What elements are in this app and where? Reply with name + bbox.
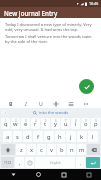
button[interactable]: 8 <box>71 118 80 129</box>
button[interactable]: Backspace <box>87 144 100 155</box>
button[interactable]: 3 <box>21 118 30 129</box>
button[interactable]: j <box>66 131 76 142</box>
staticText: a <box>6 133 10 141</box>
button[interactable]: More suggestions <box>2 110 7 115</box>
button[interactable]: a <box>3 131 12 142</box>
button[interactable]: f <box>33 131 43 142</box>
staticText: o <box>84 120 88 128</box>
button[interactable]: b <box>57 144 66 155</box>
staticText: j <box>70 133 72 141</box>
staticText: l <box>92 133 94 141</box>
button[interactable]: 7 <box>61 118 70 129</box>
button[interactable]: Underline <box>37 100 44 107</box>
staticText: x <box>30 146 34 154</box>
button[interactable]: 0 <box>91 118 100 129</box>
staticText: , <box>19 159 21 167</box>
staticText: p <box>94 120 98 128</box>
button[interactable]: l <box>88 131 98 142</box>
button[interactable]: Emoji <box>25 157 34 168</box>
button[interactable]: Strikethrough <box>52 100 59 107</box>
staticText: U <box>39 100 43 107</box>
staticText: t <box>44 120 47 128</box>
staticText: c <box>40 146 43 154</box>
staticText: English <box>50 161 61 165</box>
staticText: 1 <box>5 119 7 123</box>
staticText: f <box>37 133 39 141</box>
button[interactable]: Switch keyboard <box>76 169 101 180</box>
staticText: 10:46 <box>89 1 99 6</box>
button[interactable]: Shift <box>1 144 15 155</box>
staticText: 9 <box>85 119 87 123</box>
button[interactable]: 4 <box>31 118 40 129</box>
staticText: b <box>60 146 64 154</box>
staticText: z <box>20 146 23 154</box>
staticText: s <box>16 133 19 141</box>
button[interactable]: , <box>15 157 24 168</box>
staticText: 0 <box>95 119 97 123</box>
staticText: Today I discovered a new type of minerly… <box>5 22 96 32</box>
staticText: n <box>70 146 74 154</box>
button[interactable]: Back <box>0 169 26 180</box>
staticText: d <box>26 133 30 141</box>
staticText: 2 <box>15 119 17 123</box>
button[interactable]: Recent apps <box>51 169 76 180</box>
button[interactable]: English <box>35 157 75 168</box>
staticText: 4 <box>35 119 37 123</box>
staticText: w <box>13 120 18 128</box>
staticText: e <box>24 120 28 128</box>
staticText: u <box>64 120 68 128</box>
staticText: v <box>50 146 53 154</box>
button[interactable]: Bold <box>7 100 14 107</box>
staticText: . <box>80 159 82 167</box>
staticText: New Journal Entry <box>4 9 58 17</box>
button[interactable]: 6 <box>51 118 60 129</box>
button[interactable]: z <box>16 144 26 155</box>
button[interactable]: Bulleted list <box>67 100 74 107</box>
button[interactable]: 2 <box>11 118 20 129</box>
staticText: 8 <box>75 119 77 123</box>
staticText: h <box>58 133 62 141</box>
button[interactable]: 5 <box>41 118 50 129</box>
button[interactable]: Italic <box>22 100 29 107</box>
button[interactable]: g <box>44 131 54 142</box>
button[interactable]: ?123 <box>1 157 14 168</box>
button[interactable]: c <box>37 144 46 155</box>
button[interactable]: s <box>13 131 22 142</box>
button[interactable]: h <box>55 131 65 142</box>
button[interactable]: Save entry <box>79 79 94 94</box>
staticText: m <box>79 146 85 154</box>
staticText: 3 <box>25 119 27 123</box>
button[interactable]: m <box>77 144 86 155</box>
button[interactable]: k <box>77 131 87 142</box>
button[interactable]: Enter <box>86 157 100 168</box>
staticText: i <box>75 120 77 128</box>
staticText: B <box>9 100 13 107</box>
staticText: I <box>25 100 27 107</box>
button[interactable]: x <box>27 144 36 155</box>
button[interactable]: n <box>67 144 76 155</box>
staticText: k <box>80 133 84 141</box>
button[interactable]: . <box>76 157 85 168</box>
button[interactable]: Home <box>26 169 51 180</box>
staticText: y <box>54 120 57 128</box>
staticText: Tomorrow I shall venture into the woods … <box>5 34 96 44</box>
staticText: into the woods <box>39 110 69 116</box>
button[interactable]: 9 <box>81 118 90 129</box>
button[interactable]: d <box>23 131 32 142</box>
staticText: ?123 <box>4 160 12 165</box>
button[interactable]: Numbered list <box>82 100 89 107</box>
staticText: q <box>4 120 8 128</box>
button[interactable]: v <box>47 144 56 155</box>
button[interactable]: 1 <box>1 118 10 129</box>
staticText: 7 <box>65 119 67 123</box>
staticText: 6 <box>55 119 57 123</box>
staticText: 5 <box>45 119 47 123</box>
staticText: g <box>47 133 51 141</box>
staticText: r <box>34 120 37 128</box>
